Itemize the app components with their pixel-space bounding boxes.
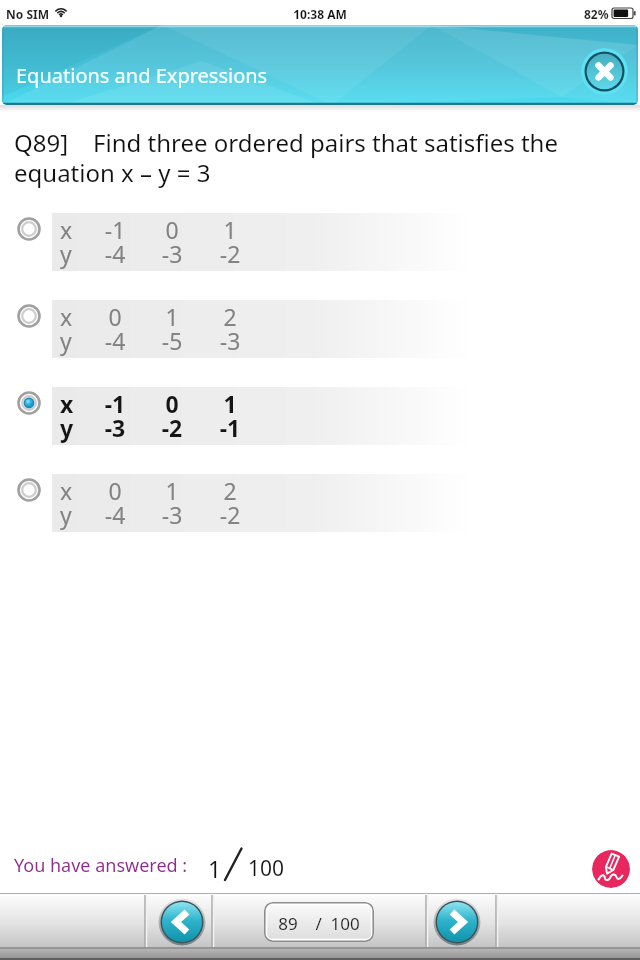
staticText: 0 bbox=[152, 388, 192, 419]
staticText: -4 bbox=[95, 325, 135, 356]
staticText: -2 bbox=[152, 412, 192, 443]
staticText: -2 bbox=[210, 499, 250, 530]
staticText: 0 bbox=[152, 214, 192, 245]
staticText: y bbox=[60, 412, 74, 443]
button[interactable] bbox=[592, 850, 630, 888]
staticText: 1 bbox=[152, 301, 192, 332]
staticText: -2 bbox=[210, 238, 250, 269]
button[interactable]: x bbox=[0, 300, 640, 358]
staticText: Q89] Find three ordered pairs that satis… bbox=[14, 126, 558, 189]
staticText: -5 bbox=[152, 325, 192, 356]
staticText: x bbox=[60, 388, 74, 419]
staticText: -1 bbox=[210, 412, 250, 443]
staticText: -3 bbox=[95, 412, 135, 443]
button[interactable]: x bbox=[0, 213, 640, 271]
staticText: x bbox=[60, 301, 73, 332]
button[interactable] bbox=[433, 898, 481, 946]
staticText: 1 bbox=[210, 388, 250, 419]
button[interactable]: 89 / 100 bbox=[264, 902, 374, 942]
staticText: 1 bbox=[210, 214, 250, 245]
staticText: y bbox=[60, 238, 72, 269]
staticText: 89 / 100 bbox=[264, 912, 374, 935]
staticText: y bbox=[60, 499, 72, 530]
button[interactable]: x bbox=[0, 387, 640, 445]
staticText: 0 bbox=[95, 475, 135, 506]
staticText: 2 bbox=[210, 301, 250, 332]
button[interactable] bbox=[158, 898, 206, 946]
staticText: 10:38 AM bbox=[0, 6, 640, 22]
staticText: -4 bbox=[95, 499, 135, 530]
staticText: 1 bbox=[208, 853, 222, 884]
staticText: -1 bbox=[95, 214, 135, 245]
staticText: 82% bbox=[584, 6, 609, 22]
staticText: Equations and Expressions bbox=[16, 62, 268, 89]
button[interactable]: Equations and Expressions bbox=[2, 25, 638, 105]
staticText: y bbox=[60, 325, 72, 356]
staticText: 1 bbox=[152, 475, 192, 506]
staticText: -3 bbox=[152, 499, 192, 530]
staticText: -3 bbox=[152, 238, 192, 269]
staticText: No SIM bbox=[6, 6, 49, 22]
staticText: You have answered : bbox=[14, 853, 188, 878]
staticText: 2 bbox=[210, 475, 250, 506]
staticText: -4 bbox=[95, 238, 135, 269]
staticText: 0 bbox=[95, 301, 135, 332]
staticText: x bbox=[60, 214, 73, 245]
staticText: x bbox=[60, 475, 73, 506]
button[interactable] bbox=[581, 48, 628, 95]
staticText: 100 bbox=[248, 854, 285, 883]
staticText: -3 bbox=[210, 325, 250, 356]
staticText: -1 bbox=[95, 388, 135, 419]
button[interactable]: x bbox=[0, 474, 640, 532]
